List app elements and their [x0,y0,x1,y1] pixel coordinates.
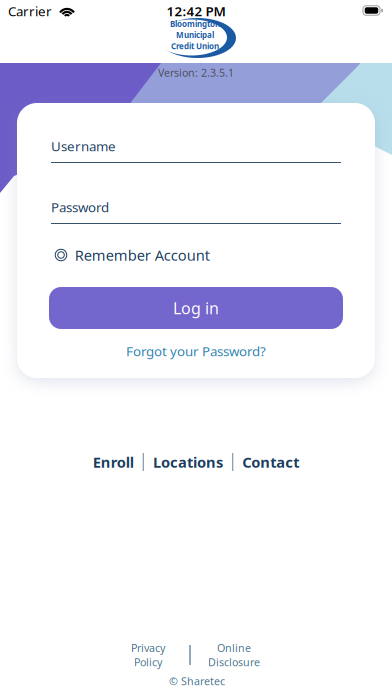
button[interactable]: Log in [49,287,343,329]
staticText: Municipal [176,30,214,40]
staticText: © Sharetec [169,674,225,688]
button[interactable]: Locations [153,452,223,472]
staticText: Locations [153,452,223,472]
staticText: Forgot your Password? [126,342,266,360]
staticText: Policy [134,655,162,669]
button[interactable]: Enroll [93,452,134,472]
staticText: Username [51,137,116,155]
staticText: Disclosure [208,655,260,669]
staticText: Remember Account [75,245,210,265]
button[interactable]: Contact [242,452,299,472]
button[interactable]: Forgot your Password? [126,342,266,360]
staticText: Contact [242,452,299,472]
staticText: Version: 2.3.5.1 [158,65,234,80]
staticText: Enroll [93,452,134,472]
button[interactable]: Online [208,641,260,669]
staticText: 12:42 PM [166,2,225,20]
button[interactable]: Remember Account [55,245,210,265]
staticText: Privacy [131,641,165,655]
staticText: Credit Union [171,41,219,51]
button[interactable]: Privacy [131,641,165,669]
button[interactable]: © Sharetec [169,674,225,688]
staticText: Carrier [8,2,52,20]
staticText: Log in [173,297,219,319]
staticText: Online [217,641,251,655]
staticText: Bloomington [170,19,220,29]
staticText: Password [51,198,109,216]
